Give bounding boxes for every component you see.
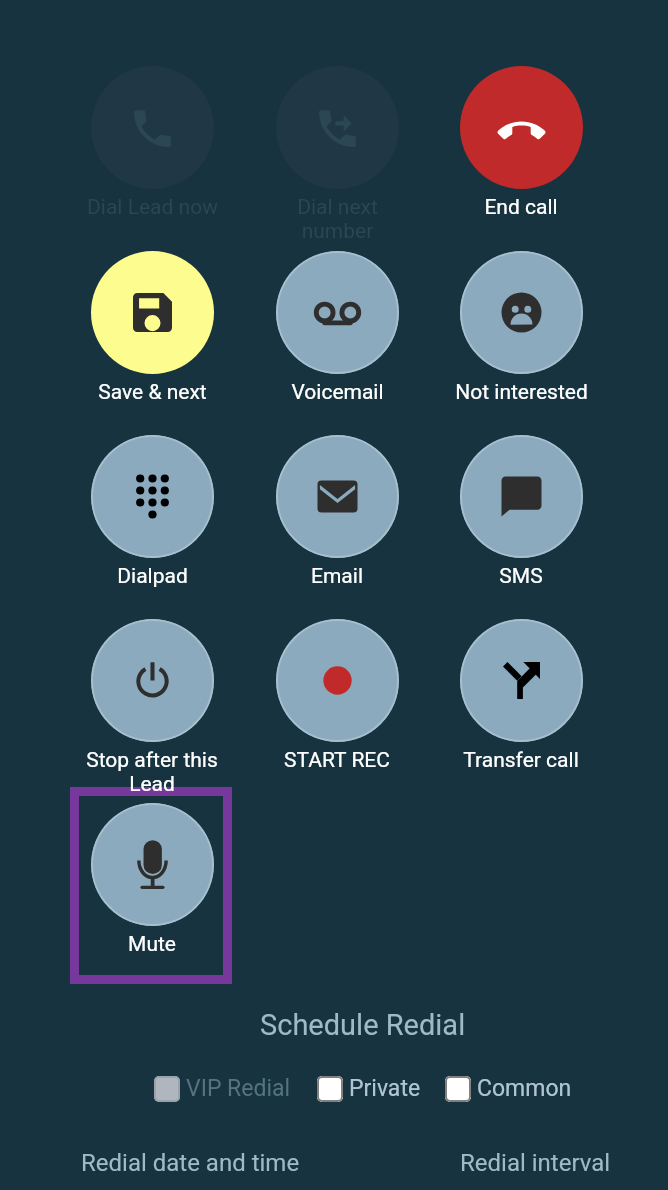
- button[interactable]: Not interested: [460, 251, 583, 374]
- button[interactable]: Dial Lead now: [91, 66, 214, 189]
- staticText: Save & next: [98, 380, 207, 405]
- button[interactable]: Start recording: [276, 619, 399, 742]
- staticText: Dial Lead now: [87, 195, 218, 220]
- staticText: Stop after this Lead: [86, 748, 218, 796]
- staticText: SMS: [499, 564, 543, 589]
- button[interactable]: Common: [445, 1075, 572, 1102]
- staticText: Redial interval: [460, 1149, 611, 1177]
- staticText: Not interested: [455, 380, 588, 405]
- button[interactable]: VIP Redial: [154, 1075, 291, 1102]
- button[interactable]: Transfer call: [460, 619, 583, 742]
- button[interactable]: Voicemail: [276, 251, 399, 374]
- button[interactable]: Dial next number: [276, 66, 399, 189]
- staticText: Dialpad: [117, 564, 188, 589]
- staticText: Private: [349, 1075, 421, 1102]
- staticText: Schedule Redial: [260, 1008, 466, 1042]
- staticText: Dial next number: [297, 195, 378, 243]
- button[interactable]: Dialpad: [91, 435, 214, 558]
- staticText: VIP Redial: [186, 1075, 291, 1102]
- staticText: Mute: [128, 932, 176, 957]
- button[interactable]: Save and next: [91, 251, 214, 374]
- staticText: End call: [484, 195, 558, 220]
- staticText: Email: [311, 564, 363, 589]
- button[interactable]: Email: [276, 435, 399, 558]
- button[interactable]: Mute: [91, 803, 214, 926]
- staticText: Voicemail: [291, 380, 384, 405]
- button[interactable]: Private: [317, 1075, 421, 1102]
- button[interactable]: SMS: [460, 435, 583, 558]
- button[interactable]: Stop after this Lead: [91, 619, 214, 742]
- staticText: START REC: [284, 748, 390, 773]
- staticText: Transfer call: [463, 748, 579, 773]
- staticText: Redial date and time: [81, 1149, 300, 1177]
- staticText: Common: [477, 1075, 572, 1102]
- button[interactable]: End call: [460, 66, 583, 189]
